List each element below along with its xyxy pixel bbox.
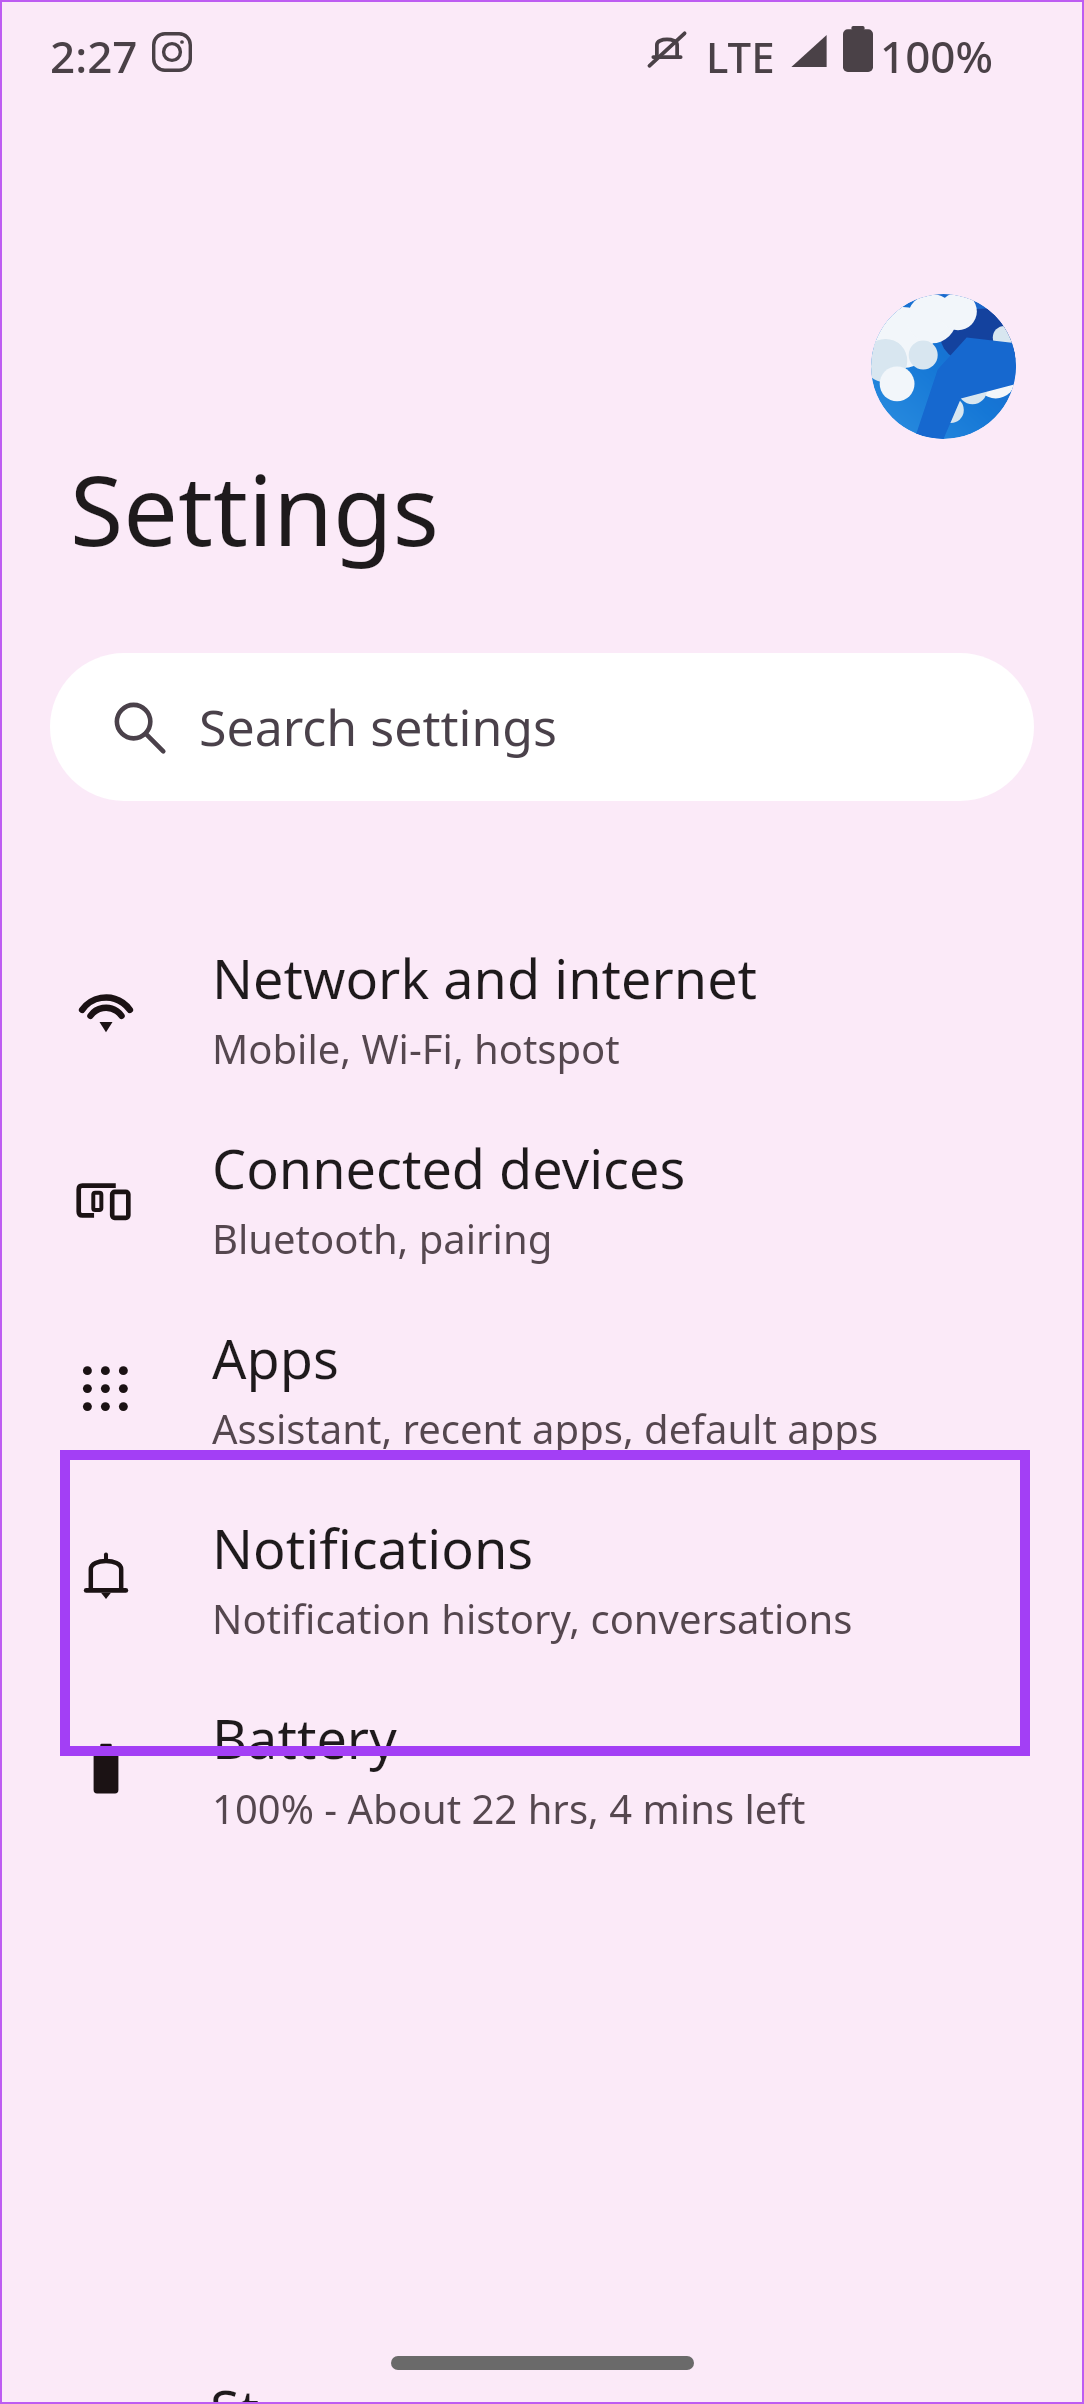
staticText: Mobile, Wi-Fi, hotspot [212,1021,620,1075]
staticText: Search settings [199,693,557,761]
staticText: 2:27 [50,26,138,86]
staticText: Apps [212,1321,339,1395]
staticText: 100% [880,26,993,86]
button[interactable]: Apps [0,1293,1084,1483]
staticText: Bluetooth, pairing [212,1211,553,1265]
staticText: Notifications [212,1511,534,1585]
button[interactable]: Network and internet [0,913,1084,1103]
button[interactable]: Connected devices [0,1103,1084,1293]
button[interactable]: Battery [0,1673,1084,1863]
staticText: 100% - About 22 hrs, 4 mins left [212,1781,806,1835]
staticText: LTE [706,28,775,85]
button[interactable]: Account [871,294,1016,439]
staticText: St [210,2372,260,2404]
button[interactable]: Search settings [50,653,1034,801]
button[interactable]: Notifications [0,1483,1084,1673]
staticText: Network and internet [212,941,758,1015]
staticText: Assistant, recent apps, default apps [212,1401,879,1455]
staticText: Connected devices [212,1131,686,1205]
staticText: Settings [70,442,440,574]
staticText: Notification history, conversations [212,1591,853,1645]
staticText: Battery [212,1701,397,1775]
